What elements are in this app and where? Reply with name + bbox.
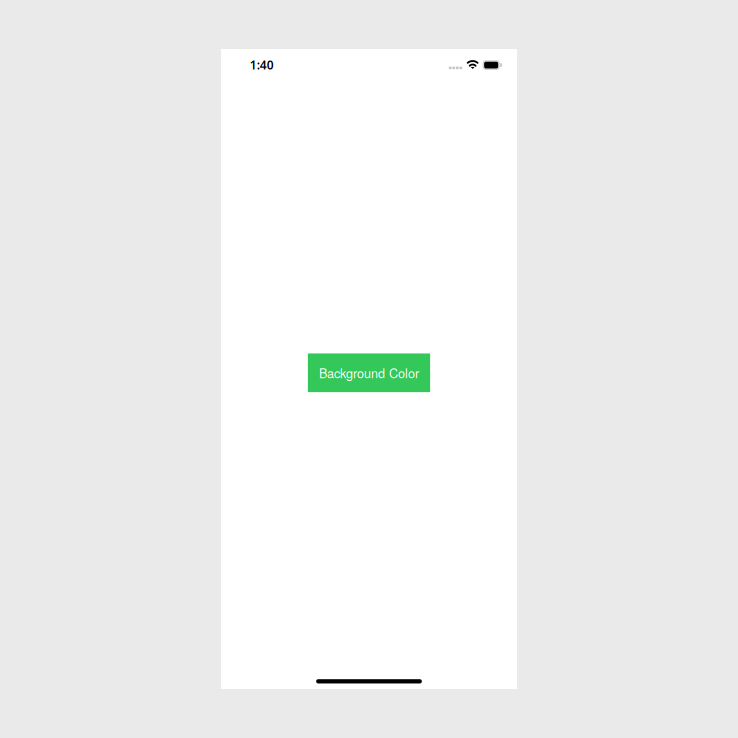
button[interactable]: Background Color [308, 353, 430, 392]
staticText: Background Color [319, 364, 419, 382]
staticText: 1:40 [250, 57, 274, 73]
